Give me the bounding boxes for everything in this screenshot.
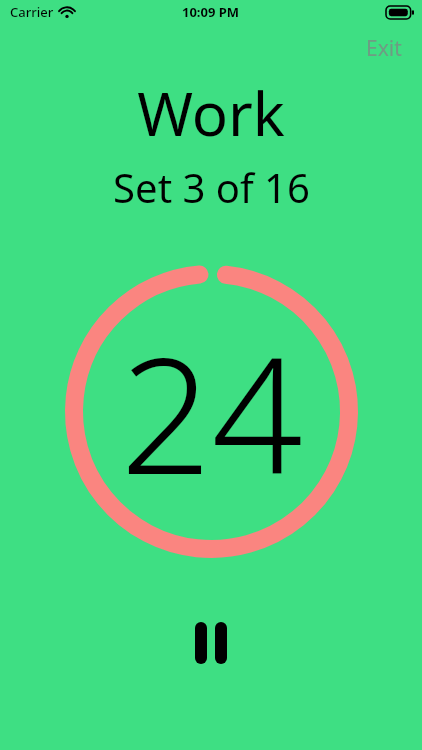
staticText: Work xyxy=(137,72,285,154)
button[interactable]: Exit xyxy=(354,28,414,69)
staticText: Carrier xyxy=(10,3,54,21)
button[interactable]: Pause xyxy=(168,600,254,686)
staticText: Exit xyxy=(366,34,402,63)
staticText: 10:09 PM xyxy=(182,3,240,21)
staticText: 24 xyxy=(120,303,303,521)
staticText: Set 3 of 16 xyxy=(113,160,310,214)
